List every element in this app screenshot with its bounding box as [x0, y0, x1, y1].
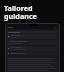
button[interactable] [7, 46, 58, 51]
button[interactable] [7, 40, 58, 45]
staticText: guidance [4, 12, 37, 20]
button[interactable] [7, 31, 58, 33]
button[interactable] [7, 57, 58, 72]
button[interactable] [7, 52, 58, 55]
staticText: Tailored [4, 4, 33, 12]
button[interactable] [7, 34, 58, 39]
button[interactable]: Tailored guidance preview [5, 23, 60, 72]
